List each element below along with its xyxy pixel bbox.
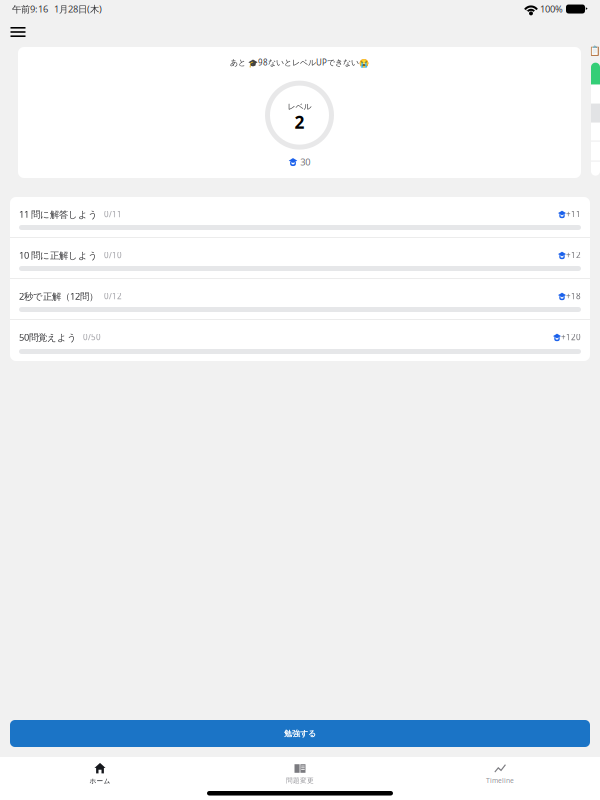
staticText: 11 問に解答しよう [19, 208, 98, 220]
staticText: 0/10 [104, 250, 122, 260]
button[interactable]: Menu [4, 21, 32, 43]
staticText: あと 🎓98ないとレベルUPできない😭 [230, 57, 369, 68]
staticText: 2秒で正解（12問） [19, 290, 98, 302]
staticText: 勉強する [284, 729, 316, 738]
staticText: +12 [566, 250, 581, 260]
staticText: 30 [300, 156, 310, 168]
staticText: レベル [287, 102, 311, 111]
button[interactable]: 10 問に正解しよう [10, 238, 590, 279]
button[interactable]: 2秒で正解（12問） [10, 279, 590, 320]
button[interactable]: ホーム [0, 757, 200, 791]
staticText: 100% [540, 3, 563, 15]
staticText: 0/11 [104, 209, 122, 219]
staticText: 0/12 [104, 291, 122, 301]
staticText: 50問覚えよう [19, 331, 77, 343]
button[interactable]: 11 問に解答しよう [10, 197, 590, 238]
staticText: ホーム [89, 777, 110, 785]
button[interactable]: 50問覚えよう [10, 320, 590, 361]
staticText: Timeline [486, 776, 514, 785]
staticText: 問題変更 [286, 776, 314, 785]
button[interactable]: 問題変更 [200, 757, 400, 791]
staticText: 0/50 [83, 332, 101, 342]
staticText: +120 [561, 332, 581, 342]
staticText: 10 問に正解しよう [19, 249, 98, 261]
staticText: +11 [566, 209, 581, 219]
button[interactable]: Timeline [400, 757, 600, 791]
button[interactable]: 勉強する [10, 720, 590, 747]
staticText: 午前9:16 1月28日(木) [12, 3, 102, 15]
staticText: 📋 [589, 45, 600, 56]
staticText: 2 [294, 110, 304, 133]
staticText: +18 [566, 291, 581, 301]
